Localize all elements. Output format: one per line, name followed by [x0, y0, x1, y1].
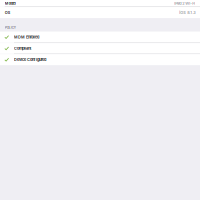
button[interactable]: Model	[0, 0, 200, 6]
button[interactable]: Compliant	[0, 43, 200, 54]
staticText: Compliant	[14, 46, 31, 51]
staticText: Device Configured	[14, 57, 46, 62]
staticText: OS	[5, 10, 11, 15]
button[interactable]: Device Configured	[0, 54, 200, 65]
button[interactable]: OS	[0, 7, 200, 18]
button[interactable]: MDM Enrolled	[0, 32, 200, 43]
staticText: iOS 8.1.3	[179, 10, 195, 15]
staticText: POLICY	[5, 26, 16, 30]
staticText: iPad 2 Wi-Fi	[174, 1, 195, 6]
staticText: Model	[5, 1, 16, 6]
staticText: MDM Enrolled	[14, 35, 39, 39]
